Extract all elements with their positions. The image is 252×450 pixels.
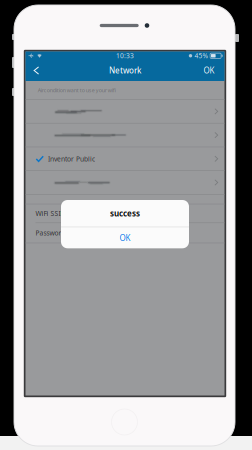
staticText: Aircondition want to use your wifi [38, 87, 116, 94]
button[interactable]: Inventor Public [25, 147, 224, 170]
button[interactable] [25, 100, 224, 123]
staticText: Network [109, 65, 141, 76]
staticText: 10:33 [116, 51, 134, 60]
button[interactable]: Back [25, 60, 45, 81]
staticText: OK [119, 232, 130, 243]
button[interactable]: OK [61, 227, 189, 248]
staticText: success [110, 208, 140, 219]
staticText: WiFi SSID [35, 209, 65, 218]
staticText: Inventor Public [48, 154, 95, 163]
staticText: 45% [194, 51, 208, 60]
button[interactable] [25, 171, 224, 194]
staticText: Password [35, 228, 65, 237]
button[interactable] [25, 124, 224, 147]
staticText: OK [203, 65, 214, 76]
button[interactable]: OK [197, 60, 224, 81]
